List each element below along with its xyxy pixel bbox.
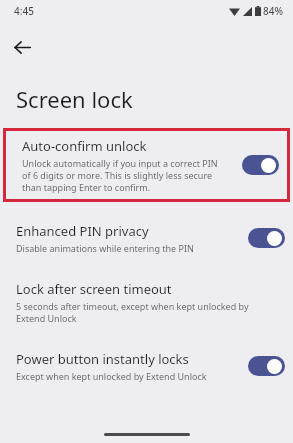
staticText: 84% (263, 4, 283, 18)
staticText: than tapping Enter to confirm. (22, 181, 151, 193)
button[interactable]: Auto-confirm unlock (6, 131, 287, 199)
button[interactable]: Lock after screen timeout (0, 274, 293, 330)
staticText: Auto-confirm unlock (22, 137, 147, 155)
button[interactable]: Toggle (248, 356, 285, 376)
staticText: Disable animations while entering the PI… (16, 242, 194, 254)
button[interactable]: Back (7, 32, 37, 62)
staticText: Extend Unlock (16, 312, 77, 324)
staticText: Unlock automatically if you input a corr… (22, 157, 218, 169)
staticText: Screen lock (16, 84, 133, 114)
staticText: of 6 digits or more. This is slightly le… (22, 169, 213, 181)
staticText: 4:45 (14, 4, 34, 18)
button[interactable]: Toggle (242, 155, 279, 175)
staticText: Lock after screen timeout (16, 280, 172, 298)
staticText: 5 seconds after timeout, except when kep… (16, 300, 249, 312)
staticText: Power button instantly locks (16, 350, 189, 368)
button[interactable]: Toggle (248, 228, 285, 248)
staticText: Enhanced PIN privacy (16, 222, 149, 240)
staticText: Except when kept unlocked by Extend Unlo… (16, 370, 207, 382)
button[interactable]: Power button instantly locks (0, 344, 293, 388)
button[interactable]: Enhanced PIN privacy (0, 216, 293, 260)
